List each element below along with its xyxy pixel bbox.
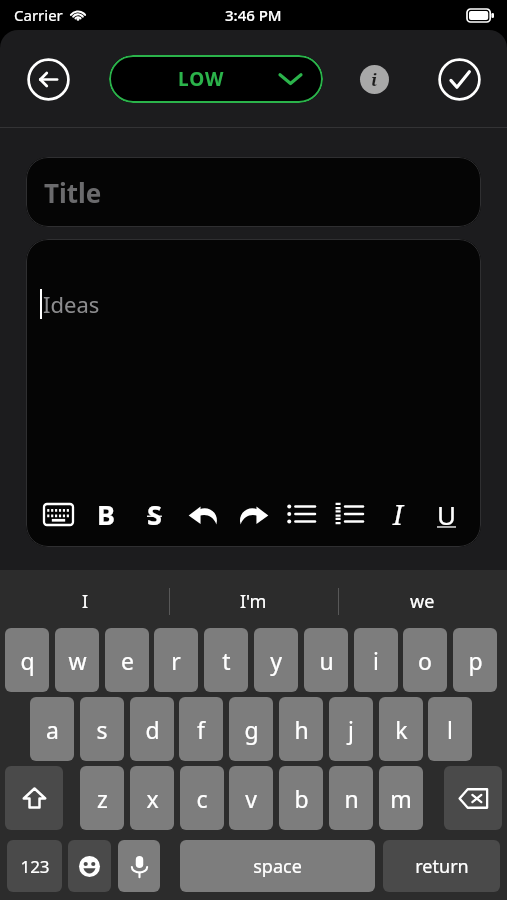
- button[interactable]: Emoji: [68, 840, 111, 892]
- staticText: I: [393, 496, 403, 533]
- staticText: Carrier: [14, 5, 63, 25]
- staticText: i: [373, 645, 379, 676]
- button[interactable]: Numbered list: [325, 481, 373, 547]
- staticText: 3:46 PM: [225, 5, 282, 25]
- button[interactable]: Italic: [374, 481, 422, 547]
- button[interactable]: t: [204, 628, 248, 692]
- button[interactable]: b: [279, 766, 323, 830]
- button[interactable]: Strikethrough: [130, 481, 178, 547]
- button[interactable]: Redo: [228, 481, 276, 547]
- staticText: w: [68, 645, 87, 676]
- staticText: m: [390, 783, 412, 814]
- staticText: we: [410, 589, 435, 614]
- button[interactable]: o: [403, 628, 447, 692]
- staticText: h: [294, 714, 309, 745]
- staticText: e: [121, 645, 134, 676]
- staticText: 123: [20, 855, 50, 878]
- staticText: f: [197, 714, 205, 745]
- button[interactable]: z: [80, 766, 124, 830]
- button[interactable]: h: [279, 697, 323, 761]
- button[interactable]: j: [329, 697, 373, 761]
- button[interactable]: e: [105, 628, 149, 692]
- button[interactable]: x: [130, 766, 174, 830]
- staticText: Ideas: [43, 289, 100, 319]
- button[interactable]: g: [229, 697, 273, 761]
- staticText: I'm: [240, 589, 267, 614]
- button[interactable]: Bold: [82, 481, 130, 547]
- staticText: g: [244, 714, 259, 745]
- staticText: U: [437, 497, 457, 532]
- staticText: I: [82, 589, 89, 614]
- staticText: x: [146, 783, 159, 814]
- staticText: d: [145, 714, 160, 745]
- button[interactable]: Ideas: [26, 239, 481, 547]
- button[interactable]: c: [180, 766, 224, 830]
- button[interactable]: k: [379, 697, 423, 761]
- button[interactable]: Keyboard: [34, 481, 82, 547]
- button[interactable]: s: [80, 697, 124, 761]
- staticText: return: [415, 854, 469, 879]
- staticText: j: [348, 714, 354, 745]
- button[interactable]: p: [453, 628, 497, 692]
- button[interactable]: u: [304, 628, 348, 692]
- button[interactable]: I'm: [193, 578, 313, 624]
- button[interactable]: 123: [7, 840, 62, 892]
- button[interactable]: Back: [24, 55, 72, 103]
- staticText: i: [371, 68, 378, 91]
- staticText: space: [253, 854, 302, 879]
- button[interactable]: Info: [352, 57, 396, 101]
- staticText: q: [20, 645, 35, 676]
- staticText: n: [344, 783, 359, 814]
- button[interactable]: l: [428, 697, 472, 761]
- button[interactable]: i: [354, 628, 398, 692]
- staticText: LOW: [178, 66, 225, 92]
- button[interactable]: w: [55, 628, 99, 692]
- button[interactable]: Title: [26, 157, 481, 227]
- button[interactable]: Done: [435, 55, 483, 103]
- button[interactable]: LOW: [109, 55, 323, 103]
- button[interactable]: r: [154, 628, 198, 692]
- staticText: c: [196, 783, 208, 814]
- button[interactable]: Undo: [180, 481, 228, 547]
- staticText: b: [294, 783, 309, 814]
- button[interactable]: a: [30, 697, 74, 761]
- staticText: l: [447, 714, 453, 745]
- staticText: u: [319, 645, 334, 676]
- button[interactable]: we: [362, 578, 482, 624]
- staticText: Title: [44, 175, 102, 210]
- staticText: p: [468, 645, 483, 676]
- button[interactable]: I: [25, 578, 145, 624]
- button[interactable]: Shift: [5, 766, 63, 830]
- staticText: z: [97, 783, 108, 814]
- button[interactable]: y: [254, 628, 298, 692]
- button[interactable]: Bulleted list: [277, 481, 325, 547]
- staticText: S: [147, 496, 162, 533]
- staticText: v: [245, 783, 257, 814]
- button[interactable]: v: [229, 766, 273, 830]
- button[interactable]: space: [180, 840, 375, 892]
- button[interactable]: m: [379, 766, 423, 830]
- button[interactable]: d: [130, 697, 174, 761]
- button[interactable]: n: [329, 766, 373, 830]
- staticText: s: [96, 714, 108, 745]
- staticText: t: [222, 645, 231, 676]
- staticText: B: [97, 496, 115, 533]
- button[interactable]: q: [5, 628, 49, 692]
- button[interactable]: Dictation: [118, 840, 160, 892]
- staticText: y: [270, 645, 282, 676]
- staticText: a: [46, 714, 59, 745]
- button[interactable]: Backspace: [444, 766, 502, 830]
- staticText: k: [395, 714, 408, 745]
- button[interactable]: return: [383, 840, 500, 892]
- staticText: o: [418, 645, 432, 676]
- button[interactable]: f: [179, 697, 223, 761]
- staticText: r: [171, 645, 181, 676]
- button[interactable]: Underline: [423, 481, 471, 547]
